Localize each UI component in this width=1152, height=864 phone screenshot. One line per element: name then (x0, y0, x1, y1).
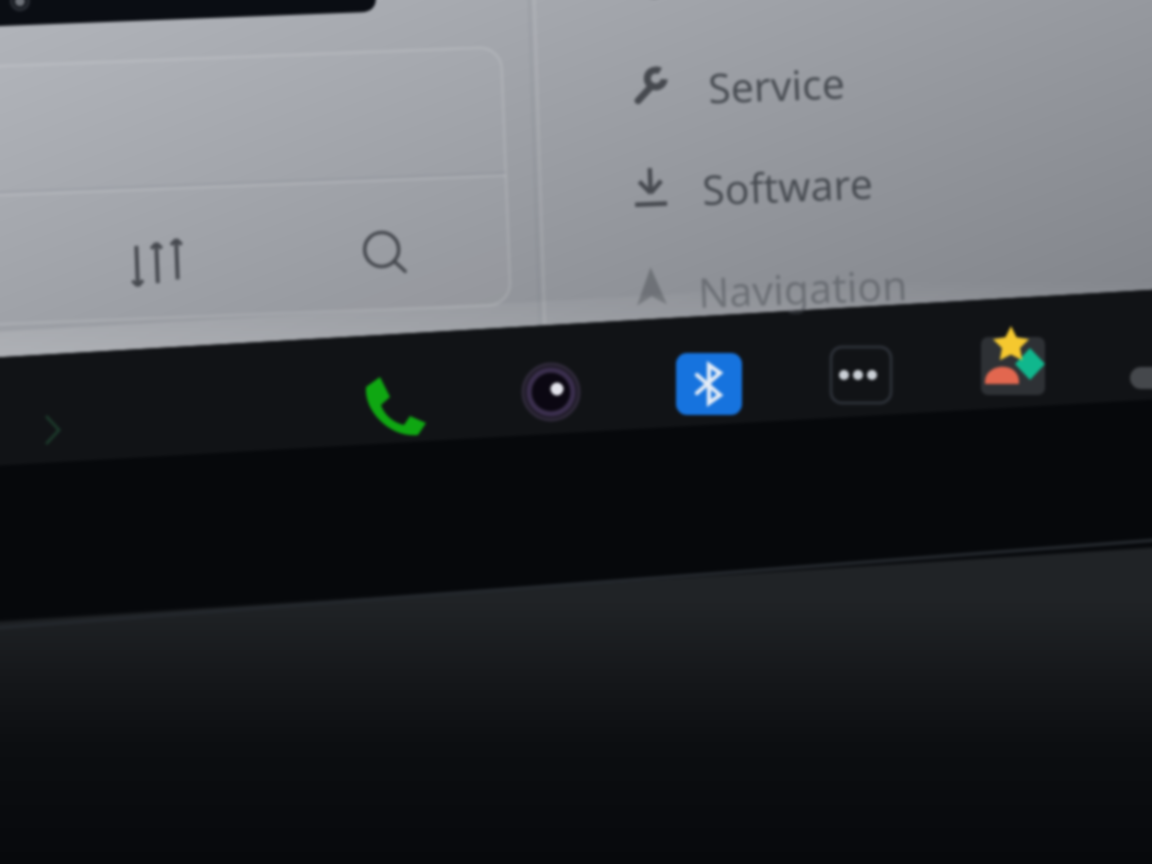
button[interactable]: Camera (512, 355, 592, 427)
button[interactable]: Bluetooth (670, 349, 746, 417)
staticText: Software (701, 155, 874, 217)
button[interactable]: Gallery (974, 332, 1056, 402)
staticText: Service (707, 54, 846, 116)
button[interactable]: Phone (356, 368, 438, 442)
button[interactable]: Expand (22, 400, 78, 460)
button[interactable]: Service (545, 30, 1152, 135)
button[interactable]: Navigation (697, 256, 909, 320)
button[interactable]: Software (541, 131, 1152, 236)
button[interactable]: Service (707, 54, 846, 116)
button[interactable]: Search (330, 204, 428, 284)
staticText: Navigation (697, 256, 909, 320)
button[interactable]: More apps (824, 342, 900, 410)
button[interactable]: Software (701, 155, 874, 217)
button[interactable]: Navigation (537, 232, 1152, 332)
button[interactable]: Sort (104, 212, 204, 290)
